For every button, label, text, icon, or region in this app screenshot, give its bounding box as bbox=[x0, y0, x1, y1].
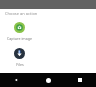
button[interactable]: Back bbox=[0, 73, 32, 87]
staticText: Capture image bbox=[7, 36, 32, 41]
staticText: Choose an action bbox=[5, 11, 38, 16]
button[interactable]: Home bbox=[32, 73, 64, 87]
button[interactable]: Capture image bbox=[3, 22, 36, 41]
staticText: Files bbox=[16, 62, 24, 67]
button[interactable]: Files bbox=[3, 48, 36, 67]
button[interactable]: Recents bbox=[64, 73, 96, 87]
